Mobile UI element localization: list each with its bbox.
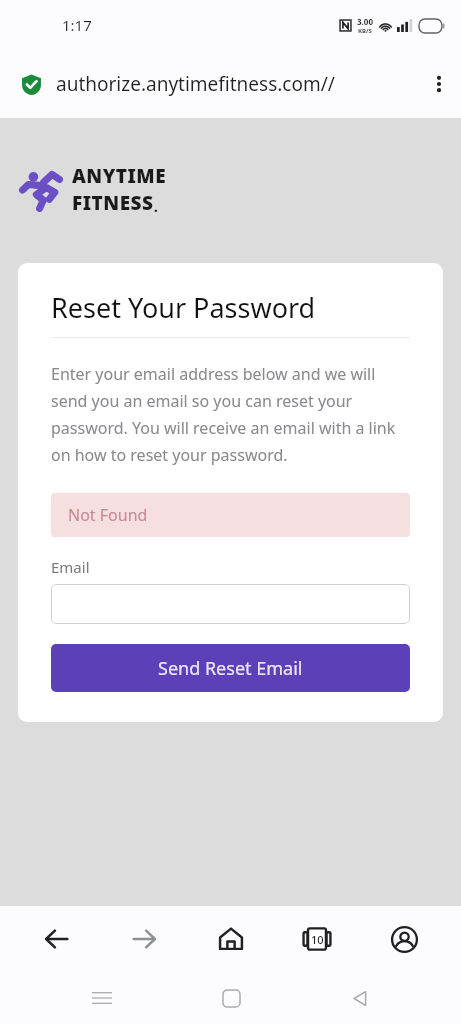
staticText: 3.00 xyxy=(357,16,373,27)
staticText: . xyxy=(154,198,158,216)
button[interactable]: Back xyxy=(332,972,386,1024)
button[interactable]: authorize.anytimefitness.com// xyxy=(56,71,417,97)
button[interactable] xyxy=(51,584,410,624)
button[interactable]: Home xyxy=(204,972,258,1024)
button[interactable]: Recent apps xyxy=(75,972,129,1024)
button[interactable]: Tabs, 10 open xyxy=(287,909,347,969)
staticText: Email xyxy=(51,557,90,577)
staticText: authorize.anytimefitness.com// xyxy=(56,71,335,97)
button[interactable]: Forward xyxy=(114,909,174,969)
button[interactable]: Account xyxy=(374,909,434,969)
button[interactable]: More options xyxy=(417,62,461,106)
staticText: Reset Your Password xyxy=(51,289,316,326)
staticText: Not Found xyxy=(68,504,148,526)
staticText: ANYTIME xyxy=(72,163,167,189)
button[interactable]: Send Reset Email xyxy=(51,644,410,692)
staticText: 1:17 xyxy=(62,15,92,35)
button[interactable]: Home xyxy=(201,909,261,969)
staticText: KB/S xyxy=(358,27,372,35)
staticText: Send Reset Email xyxy=(158,656,303,681)
staticText: 10 xyxy=(311,932,324,947)
button[interactable]: Back xyxy=(27,909,87,969)
staticText: Enter your email address below and we wi… xyxy=(51,363,410,466)
staticText: FITNESS xyxy=(72,190,154,216)
button[interactable]: Site security info xyxy=(18,71,44,97)
